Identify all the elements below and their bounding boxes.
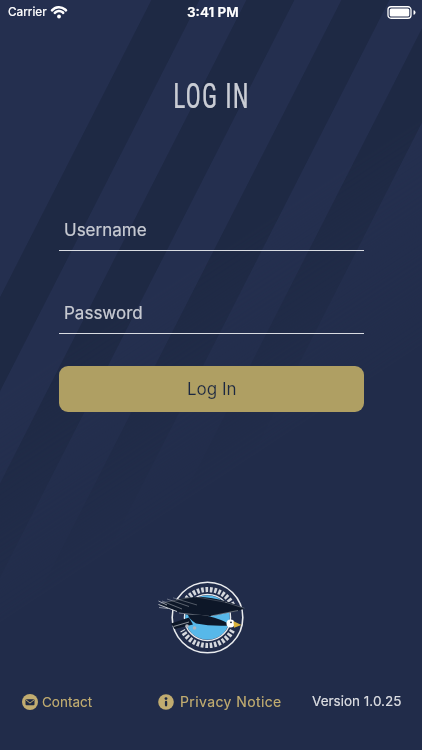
staticText: Password xyxy=(64,303,143,324)
staticText: Privacy Notice xyxy=(180,693,282,710)
button[interactable]: Version 1.0.25 xyxy=(312,693,402,709)
staticText: 3:41 PM xyxy=(187,4,239,20)
button[interactable]: Privacy Notice xyxy=(158,693,282,710)
staticText: Carrier xyxy=(8,5,47,19)
staticText: Log In xyxy=(187,379,237,400)
staticText: Contact xyxy=(42,694,93,710)
button[interactable]: Password xyxy=(59,291,364,334)
button[interactable]: Log In xyxy=(59,366,364,412)
staticText: Username xyxy=(64,220,147,241)
button[interactable]: Username xyxy=(59,208,364,251)
button[interactable]: Contact xyxy=(22,694,93,710)
staticText: LOG IN xyxy=(173,76,250,117)
